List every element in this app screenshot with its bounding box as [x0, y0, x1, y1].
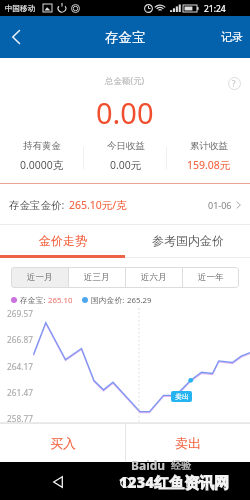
button[interactable]: 近六月: [126, 267, 182, 288]
staticText: 269.57: [7, 308, 33, 319]
staticText: 近一月: [27, 272, 53, 283]
button[interactable]: 持有黄金: [0, 140, 84, 172]
staticText: 近三月: [84, 272, 110, 283]
staticText: 近一年: [198, 272, 224, 283]
button[interactable]: 卖出: [171, 391, 192, 402]
staticText: 264.17: [7, 361, 33, 372]
staticText: 经验: [171, 459, 191, 472]
staticText: 记录: [221, 30, 243, 44]
button[interactable]: Recents: [177, 462, 207, 500]
button[interactable]: 今日收益: [84, 140, 167, 172]
staticText: Baidu: [131, 457, 166, 473]
button[interactable]: Back: [43, 462, 73, 500]
button[interactable]: 近一年: [183, 267, 239, 288]
staticText: 金价走势: [39, 233, 87, 248]
staticText: 01-06: [208, 199, 232, 211]
button[interactable]: 01-06: [208, 199, 241, 211]
staticText: 卖出: [175, 435, 201, 451]
staticText: 中国移动: [5, 4, 35, 13]
staticText: 159.08元: [187, 158, 231, 172]
staticText: 0.00: [96, 93, 154, 132]
staticText: 265.10元/克: [69, 198, 127, 212]
button[interactable]: 参考国内金价: [125, 225, 250, 258]
button[interactable]: 近三月: [69, 267, 125, 288]
button[interactable]: 累计收益: [167, 140, 250, 172]
staticText: 国内金价:: [91, 295, 125, 306]
staticText: 卖出: [175, 392, 189, 401]
staticText: 0.0000克: [20, 158, 64, 172]
button[interactable]: 近一月: [11, 267, 68, 288]
button[interactable]: Help: [227, 76, 241, 90]
staticText: 累计收益: [190, 140, 228, 152]
staticText: 261.47: [7, 387, 33, 398]
button[interactable]: Back: [0, 16, 32, 58]
staticText: 总金额(元): [105, 75, 145, 87]
staticText: 参考国内金价: [152, 233, 224, 248]
button[interactable]: 买入: [0, 423, 125, 462]
staticText: 265.29: [127, 295, 152, 306]
button[interactable]: 记录: [221, 16, 243, 58]
staticText: 266.87: [7, 334, 33, 345]
staticText: 近六月: [141, 272, 167, 283]
button[interactable]: Home: [110, 462, 140, 500]
staticText: ?: [232, 78, 236, 89]
staticText: 265.10: [48, 295, 73, 306]
staticText: 258.77: [7, 413, 33, 424]
button[interactable]: 卖出: [125, 423, 250, 462]
button[interactable]: 金价走势: [0, 225, 125, 258]
staticText: 0.00元: [110, 158, 142, 172]
staticText: 今日收益: [107, 140, 145, 152]
staticText: 持有黄金: [23, 140, 61, 152]
staticText: 买入: [50, 435, 76, 451]
staticText: 存金宝金价:: [9, 198, 65, 212]
staticText: 存金宝:: [20, 295, 46, 306]
staticText: 存金宝: [105, 29, 146, 46]
staticText: 1234红鱼资讯网: [119, 472, 230, 492]
staticText: 21:24: [204, 3, 226, 15]
